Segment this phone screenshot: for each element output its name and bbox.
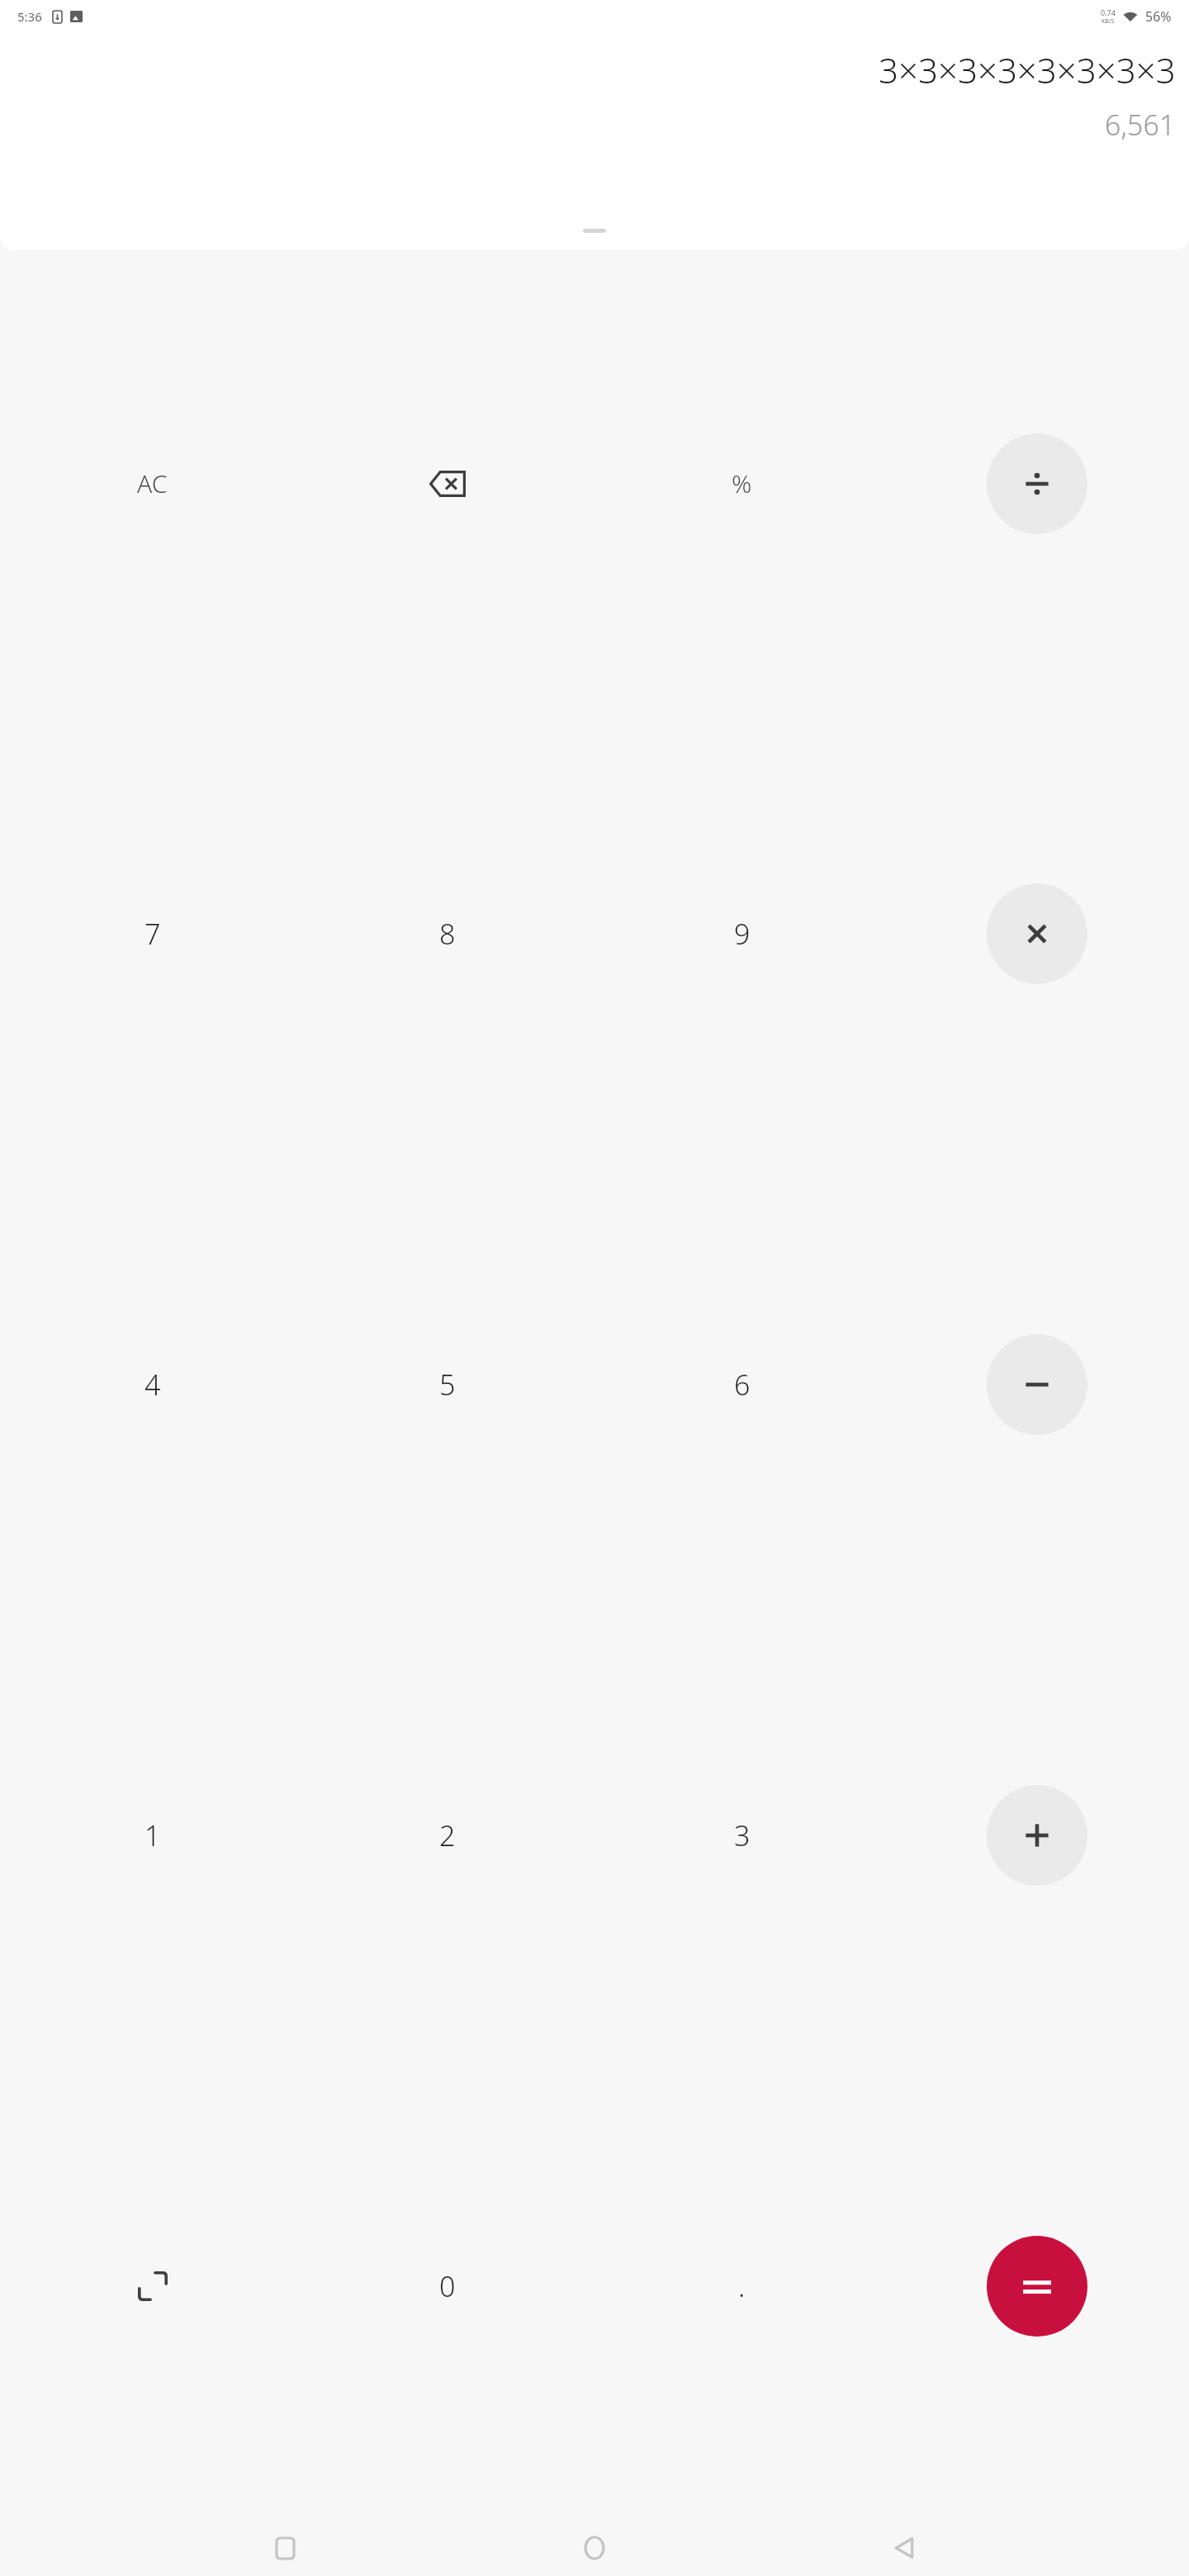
staticText: 56% [1145,7,1172,26]
button[interactable] [889,1159,1184,1610]
button[interactable]: Scientific mode [5,2061,300,2512]
button[interactable]: 1 [5,1610,300,2061]
staticText: 6,561 [1105,106,1176,144]
staticText: 6 [734,1366,751,1404]
staticText: 7 [144,915,161,953]
staticText: 1 [144,1816,161,1854]
staticText: % [732,466,752,500]
button[interactable]: 2 [300,1610,594,2061]
button[interactable]: % [594,258,889,708]
button[interactable]: 0 [300,2061,594,2512]
staticText: 8 [439,915,456,953]
staticText: AC [137,466,168,500]
button[interactable]: 7 [5,708,300,1159]
staticText: 4 [144,1366,161,1404]
button[interactable] [889,258,1184,708]
button[interactable]: 4 [5,1159,300,1610]
button[interactable]: Backspace [300,258,594,708]
button[interactable]: Recents [260,2523,310,2573]
button[interactable] [889,2061,1184,2512]
staticText: 5 [439,1366,456,1404]
staticText: 3×3×3×3×3×3×3×3 [879,46,1176,93]
staticText: 0.74 [1101,7,1116,17]
staticText: 5:36 [17,8,42,25]
button[interactable]: 5 [300,1159,594,1610]
button[interactable]: Back [879,2523,929,2573]
button[interactable] [889,1610,1184,2061]
button[interactable]: 3 [594,1610,889,2061]
staticText: . [738,2267,746,2305]
button[interactable]: 6 [594,1159,889,1610]
staticText: 3 [734,1816,751,1854]
staticText: 9 [734,915,751,953]
staticText: KB/S [1101,17,1115,26]
button[interactable]: AC [5,258,300,708]
staticText: 2 [439,1816,456,1854]
button[interactable]: 8 [300,708,594,1159]
button[interactable]: 9 [594,708,889,1159]
button[interactable] [889,708,1184,1159]
staticText: 0 [439,2267,456,2305]
button[interactable]: Home [570,2523,619,2573]
